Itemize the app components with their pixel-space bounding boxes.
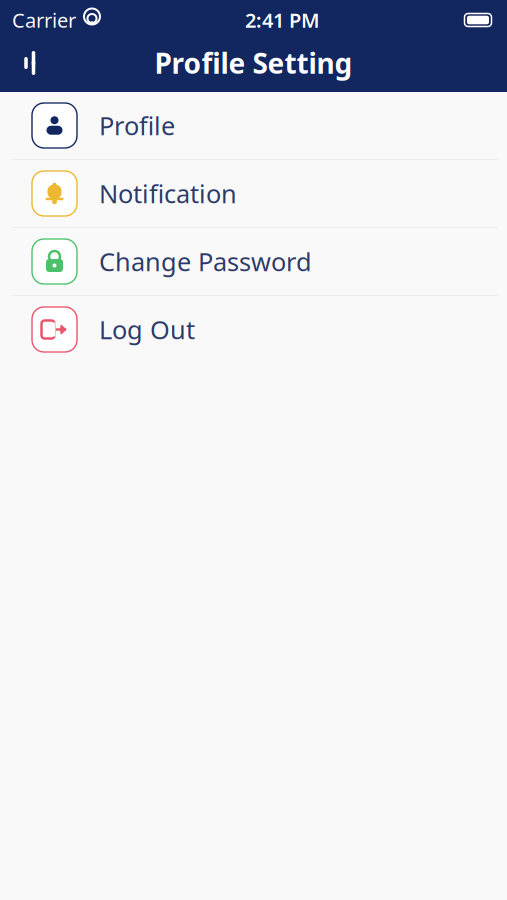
button[interactable]: Profile	[0, 92, 507, 160]
staticText: Notification	[99, 177, 237, 210]
staticText: 2:41 PM	[245, 7, 320, 33]
staticText: Profile Setting	[154, 44, 352, 82]
button[interactable]: Log Out	[0, 296, 507, 363]
staticText: Profile	[99, 109, 175, 142]
button[interactable]: Notification	[0, 160, 507, 228]
button[interactable]: Back	[6, 40, 52, 86]
staticText: Carrier	[12, 7, 76, 33]
button[interactable]: Change Password	[0, 228, 507, 296]
staticText: Change Password	[99, 245, 312, 278]
staticText: Log Out	[99, 313, 195, 346]
